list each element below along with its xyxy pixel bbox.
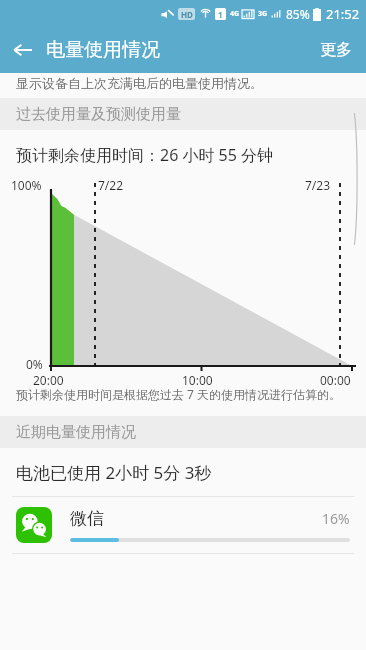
- staticText: 16%: [322, 509, 350, 528]
- staticText: 电量使用情况: [46, 38, 160, 62]
- staticText: HD: [181, 9, 193, 20]
- staticText: 85%: [286, 6, 310, 22]
- button[interactable]: 微信: [0, 497, 366, 553]
- staticText: 近期电量使用情况: [16, 423, 136, 442]
- staticText: 21:52: [326, 5, 360, 23]
- staticText: 微信: [70, 508, 104, 529]
- staticText: 20:00: [33, 372, 64, 388]
- staticText: 7/23: [305, 177, 331, 193]
- staticText: 预计剩余使用时间是根据您过去 7 天的使用情况进行估算的。: [16, 386, 342, 402]
- staticText: 3G: [258, 9, 268, 19]
- staticText: 1: [218, 9, 223, 20]
- staticText: 电池已使用 2小时 5分 3秒: [16, 461, 212, 484]
- staticText: 00:00: [320, 372, 351, 388]
- staticText: 0%: [26, 356, 43, 372]
- staticText: 10:00: [182, 372, 213, 388]
- staticText: 100%: [11, 177, 42, 193]
- staticText: 过去使用量及预测使用量: [16, 105, 181, 124]
- button[interactable]: Back: [0, 27, 46, 73]
- staticText: 预计剩余使用时间：26 小时 55 分钟: [16, 144, 274, 166]
- staticText: 4G: [230, 9, 240, 19]
- staticText: 更多: [320, 40, 352, 60]
- button[interactable]: 更多: [306, 27, 366, 73]
- staticText: 7/22: [98, 177, 124, 193]
- staticText: 显示设备自上次充满电后的电量使用情况。: [16, 75, 263, 91]
